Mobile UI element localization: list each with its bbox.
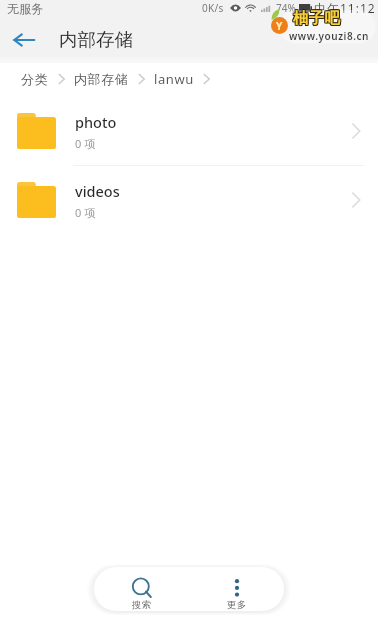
staticText: 柚子吧 <box>292 9 340 28</box>
staticText: www.youzi8.cn <box>289 29 369 43</box>
staticText: 柚子吧 <box>292 10 340 29</box>
staticText: 搜索 <box>132 599 152 611</box>
staticText: 分类 <box>21 71 49 87</box>
staticText: 柚子吧 <box>292 8 340 27</box>
staticText: 内部存储 <box>74 71 129 87</box>
button[interactable]: videos <box>0 166 378 234</box>
staticText: 柚子吧 <box>293 8 341 27</box>
staticText: Y <box>276 19 283 33</box>
staticText: 0 项 <box>75 136 96 151</box>
button[interactable]: Back <box>0 16 48 63</box>
staticText: 无服务 <box>7 1 43 16</box>
staticText: lanwu <box>154 70 194 88</box>
button[interactable]: 内部存储 <box>73 66 130 92</box>
staticText: 柚子吧 <box>294 8 342 27</box>
staticText: 74% <box>276 1 296 15</box>
staticText: 更多 <box>227 599 247 611</box>
staticText: videos <box>75 181 120 201</box>
staticText: 柚子吧 <box>293 10 341 29</box>
staticText: photo <box>75 112 117 132</box>
button[interactable]: photo <box>0 97 378 166</box>
staticText: 柚子吧 <box>293 9 341 28</box>
staticText: 0 项 <box>75 205 96 220</box>
button[interactable]: 搜索 <box>94 567 189 611</box>
staticText: 柚子吧 <box>294 10 342 29</box>
button[interactable]: lanwu <box>153 65 195 93</box>
staticText: 柚子吧 <box>294 9 342 28</box>
button[interactable]: 分类 <box>20 66 50 92</box>
staticText: 0K/s <box>202 1 224 15</box>
staticText: 内部存储 <box>59 28 133 51</box>
staticText: 中午11:12 <box>314 0 376 16</box>
button[interactable]: 更多 <box>189 567 284 611</box>
